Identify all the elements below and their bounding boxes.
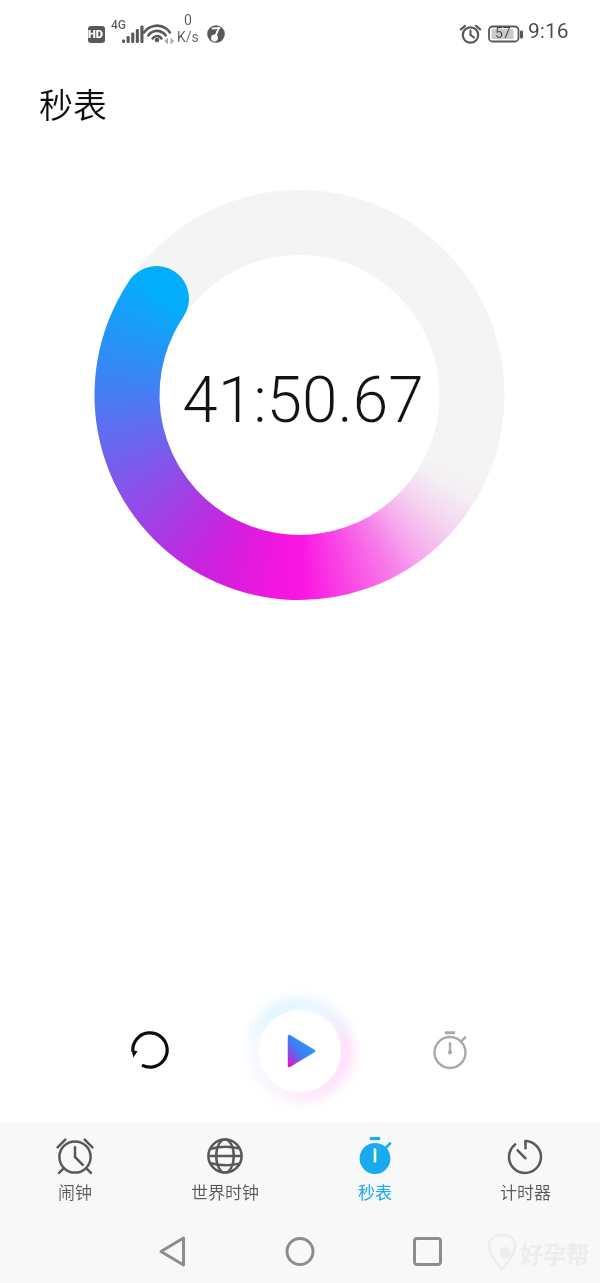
staticText: 9:16 (528, 19, 569, 44)
staticText: 闹钟 (58, 1179, 92, 1204)
button[interactable]: Start (259, 1010, 341, 1092)
button[interactable]: 秒表 (300, 1122, 450, 1220)
staticText: 4G (111, 18, 126, 32)
staticText: 计时器 (500, 1179, 551, 1204)
staticText: 0 (184, 12, 192, 28)
button[interactable]: 世界时钟 (150, 1122, 300, 1220)
staticText: 41:50.67 (3, 363, 600, 438)
button[interactable]: 计时器 (450, 1122, 600, 1220)
staticText: 秒表 (358, 1179, 392, 1204)
staticText: 57 (495, 25, 511, 41)
button[interactable]: Back (161, 1232, 201, 1272)
button[interactable]: Reset (110, 1010, 190, 1090)
staticText: K/s (177, 29, 199, 45)
staticText: 秒表 (39, 79, 107, 128)
staticText: HD (88, 28, 103, 41)
button[interactable]: Recents (408, 1232, 448, 1272)
button[interactable]: Home (280, 1232, 320, 1272)
button[interactable]: 闹钟 (0, 1122, 150, 1220)
button[interactable]: Lap (410, 1010, 490, 1090)
staticText: 世界时钟 (191, 1179, 259, 1204)
staticText: 好孕帮 (520, 1236, 589, 1269)
